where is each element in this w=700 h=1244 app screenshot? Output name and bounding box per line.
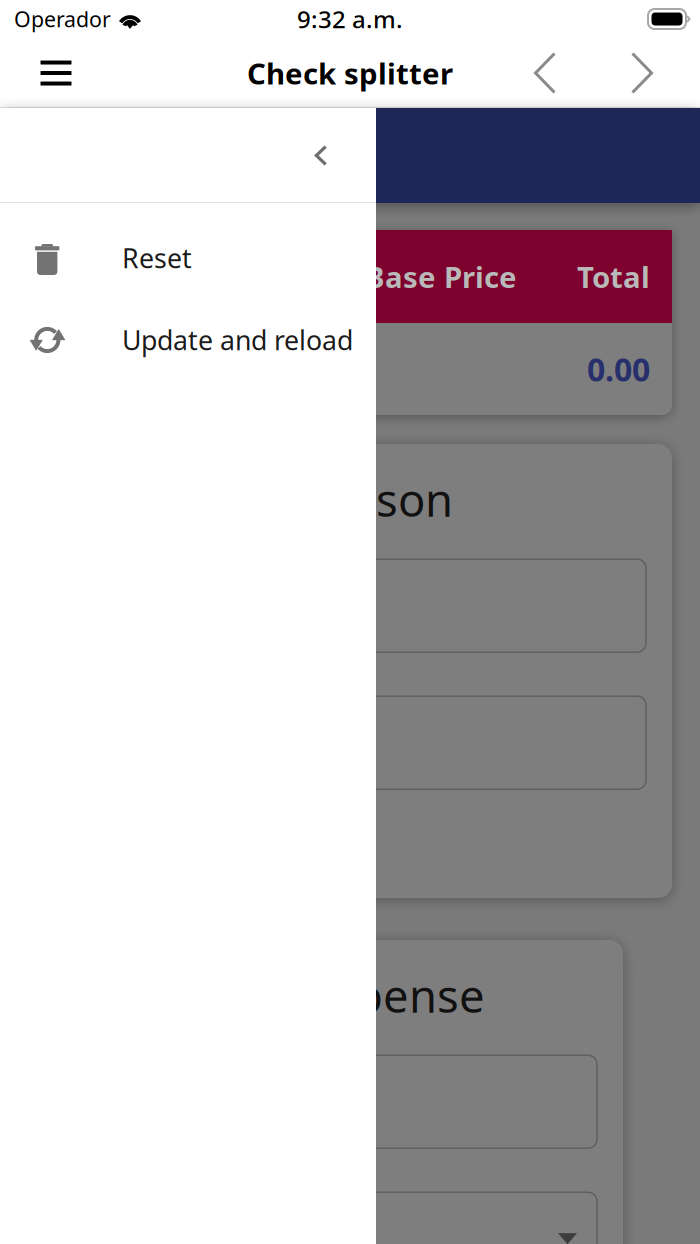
button[interactable]: Forward	[613, 42, 671, 104]
staticText: Person	[304, 469, 453, 529]
staticText: Reset	[122, 240, 192, 276]
staticText: 0.00	[587, 348, 650, 390]
staticText: Operador	[14, 5, 111, 33]
staticText: Expense	[306, 965, 485, 1025]
button[interactable]: Update and reload	[0, 299, 376, 381]
button[interactable]: Menu	[25, 42, 87, 104]
staticText: Base Price	[365, 257, 517, 296]
staticText: Update and reload	[122, 322, 353, 358]
staticText: Check splitter	[247, 53, 453, 92]
button[interactable]: Back	[516, 42, 574, 104]
staticText: 9:32 a.m.	[297, 3, 403, 35]
staticText: Total	[577, 257, 650, 296]
staticText: Name	[55, 257, 144, 296]
button[interactable]: Close menu	[292, 126, 350, 184]
button[interactable]: Reset	[0, 217, 376, 299]
